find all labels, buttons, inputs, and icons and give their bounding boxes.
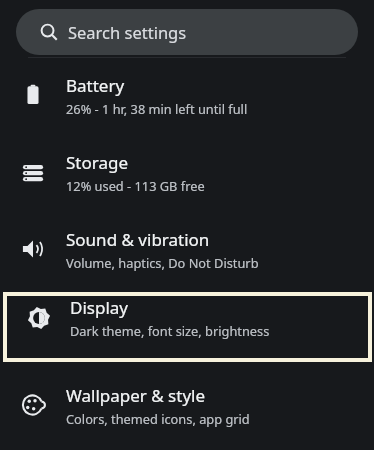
button[interactable]: Storage [0, 137, 374, 207]
other: Storage [21, 160, 45, 184]
staticText: Battery [66, 74, 125, 97]
staticText: 12% used - 113 GB free [66, 177, 205, 194]
other: Display [27, 306, 51, 330]
staticText: Volume, haptics, Do Not Disturb [66, 254, 259, 271]
staticText: Sound & vibration [66, 228, 210, 251]
button[interactable]: Wallpaper and style [0, 370, 374, 440]
staticText: 26% - 1 hr, 38 min left until full [66, 100, 248, 117]
staticText: Search settings [68, 21, 187, 43]
button[interactable]: Display [7, 296, 368, 358]
button[interactable]: Search settings [16, 9, 358, 55]
staticText: Wallpaper & style [66, 384, 206, 407]
staticText: Storage [66, 151, 129, 174]
button[interactable]: Sound and vibration [0, 214, 374, 284]
other: Wallpaper and style [21, 393, 45, 417]
button[interactable]: Battery [0, 60, 374, 130]
other: Sound and vibration [21, 237, 45, 261]
other: Battery [21, 83, 45, 107]
staticText: Dark theme, font size, brightness [70, 322, 270, 339]
staticText: Colors, themed icons, app grid [66, 410, 250, 427]
staticText: Display [70, 296, 128, 319]
